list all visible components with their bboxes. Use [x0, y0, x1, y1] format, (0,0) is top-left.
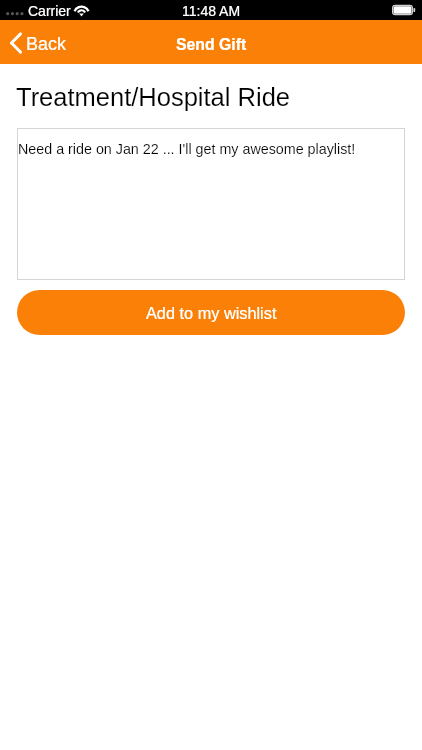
button[interactable]: Back — [0, 20, 73, 64]
staticText: Add to my wishlist — [146, 304, 277, 322]
staticText: Send Gift — [176, 36, 247, 54]
button[interactable]: Add to my wishlist — [17, 290, 405, 335]
staticText: Carrier — [28, 3, 71, 19]
staticText: 11:48 AM — [182, 3, 241, 19]
staticText: Treatment/Hospital Ride — [16, 83, 291, 111]
staticText: Back — [26, 34, 67, 54]
staticText: Need a ride on Jan 22 ... I'll get my aw… — [18, 141, 356, 157]
button[interactable]: Need a ride on Jan 22 ... I'll get my aw… — [17, 128, 405, 280]
other: Back — [10, 32, 22, 54]
